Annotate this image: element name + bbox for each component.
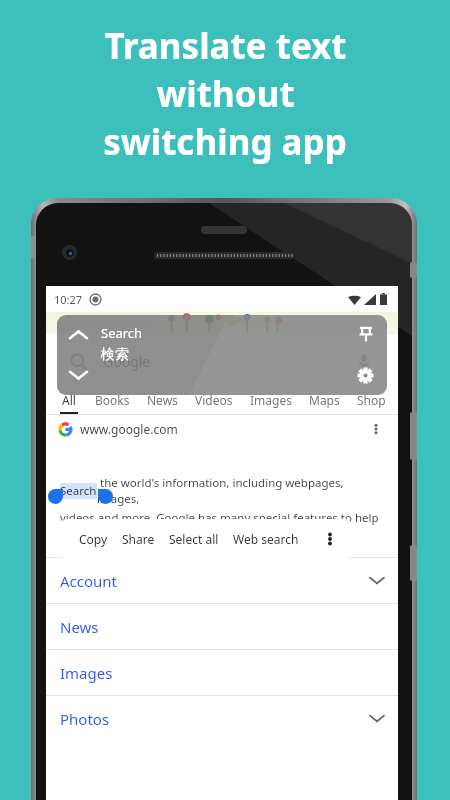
staticText: All [62,392,76,408]
staticText: Books [95,392,130,408]
staticText: videos and more. Google has many special… [60,510,379,526]
button[interactable]: Google [56,340,388,382]
button[interactable]: Shop [357,392,386,414]
button[interactable]: News [46,604,398,649]
staticText: 検索 [101,346,129,364]
staticText: without [156,70,295,118]
button[interactable]: Select all [162,525,226,553]
staticText: Maps [309,392,340,408]
button[interactable]: More [320,529,340,549]
staticText: Share [122,531,155,547]
button[interactable]: Web search [226,525,306,553]
button[interactable]: Collapse [65,322,91,348]
staticText: Google [103,352,151,371]
button[interactable]: Maps [309,392,340,414]
staticText: News [147,392,178,408]
button[interactable]: Settings [351,361,379,389]
staticText: Copy [79,531,108,547]
staticText: News [60,617,99,637]
staticText: Images [60,663,113,683]
staticText: Search [101,324,143,342]
button[interactable]: Collapse [57,315,387,395]
button[interactable]: Books [95,392,130,414]
staticText: Photos [60,709,110,729]
button[interactable]: Account [46,558,398,603]
button[interactable]: Videos [195,392,233,414]
staticText: the world's information, including webpa… [97,475,384,507]
staticText: Select all [169,531,219,547]
button[interactable]: Images [46,650,398,695]
button[interactable]: Expand [65,362,91,388]
button[interactable]: All [60,392,78,414]
button[interactable]: More options [368,421,384,437]
staticText: Shop [357,392,386,408]
staticText: Web search [233,531,299,547]
staticText: Account [60,571,118,591]
staticText: Videos [195,392,233,408]
staticText: Images [250,392,292,408]
staticText: 10:27 [54,292,83,307]
button[interactable]: Images [250,392,292,414]
button[interactable]: Share [115,525,162,553]
staticText: you find exactly what you're looking for… [60,529,279,545]
staticText: Translate text [104,22,347,70]
staticText: Search [60,483,97,499]
button[interactable]: Photos [46,696,398,741]
button[interactable]: Voice search [354,351,374,371]
staticText: www.google.com [80,421,178,437]
button[interactable]: Pin [353,321,379,347]
staticText: switching app [103,118,347,166]
button[interactable]: News [147,392,178,414]
button[interactable]: Copy [72,525,115,553]
